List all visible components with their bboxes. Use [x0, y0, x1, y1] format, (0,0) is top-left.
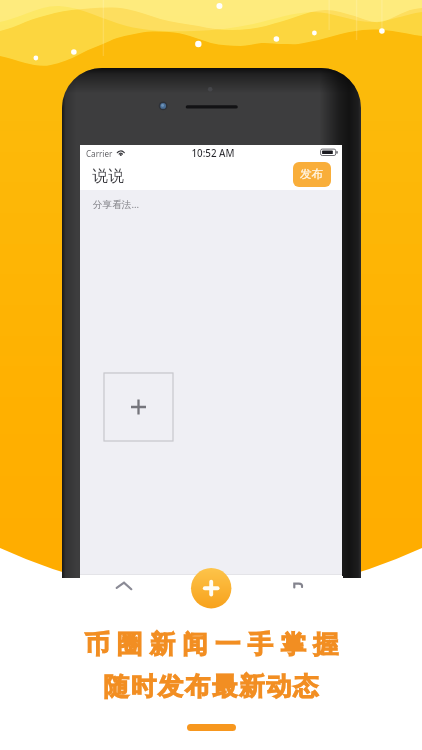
button[interactable]: 分享看法... [80, 190, 342, 222]
button[interactable]: Add photo [104, 373, 173, 441]
staticText: Carrier [86, 148, 113, 159]
button[interactable]: Home [109, 576, 141, 596]
button[interactable]: Profile [279, 576, 311, 596]
staticText: 说说 [92, 166, 124, 186]
staticText: 发布 [300, 167, 324, 182]
staticText: 币圈新闻一手掌握 [4, 629, 422, 661]
staticText: 分享看法... [93, 198, 140, 211]
staticText: 随时发布最新动态 [1, 671, 422, 703]
button[interactable]: 发布 [293, 162, 331, 187]
staticText: 10:52 AM [82, 147, 344, 160]
button[interactable]: Post [191, 568, 232, 596]
